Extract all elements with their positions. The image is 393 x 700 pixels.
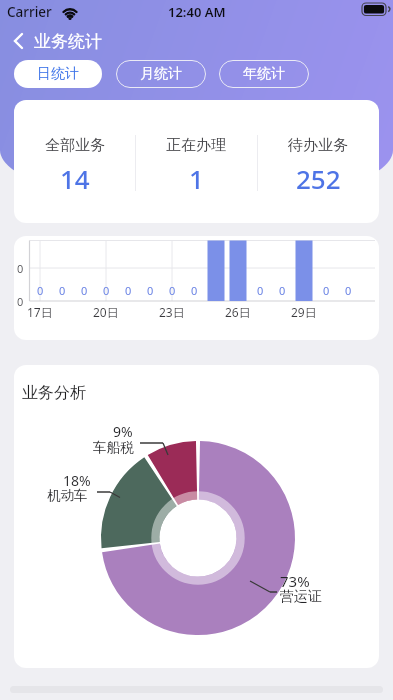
staticText: 月统计 <box>140 65 182 83</box>
staticText: 年统计 <box>243 65 285 83</box>
staticText: 0 <box>279 283 286 298</box>
button[interactable]: 业务分析 <box>14 365 379 668</box>
staticText: 全部业务 <box>45 136 105 155</box>
staticText: 23日 <box>159 304 185 320</box>
staticText: 0 <box>169 283 176 298</box>
staticText: 73% <box>280 571 310 591</box>
staticText: 26日 <box>225 304 251 320</box>
button[interactable]: 日统计 <box>14 60 102 88</box>
staticText: 业务分析 <box>22 383 86 403</box>
staticText: 0 <box>37 283 44 298</box>
staticText: 0 <box>59 283 66 298</box>
staticText: 0 <box>257 283 264 298</box>
staticText: 机动车 <box>47 487 88 504</box>
staticText: 18% <box>63 471 91 490</box>
staticText: 17日 <box>27 304 53 320</box>
staticText: 0 <box>323 283 330 298</box>
staticText: 0 <box>191 283 198 298</box>
staticText: 14 <box>60 161 90 196</box>
button[interactable]: 月统计 <box>116 60 206 88</box>
staticText: 日统计 <box>37 65 79 83</box>
staticText: 0 <box>345 283 352 298</box>
button[interactable]: 全部业务 <box>14 100 379 223</box>
staticText: 0 <box>81 283 88 298</box>
staticText: 12:40 AM <box>168 3 226 21</box>
staticText: 252 <box>296 161 341 196</box>
staticText: 29日 <box>291 304 317 320</box>
staticText: 9% <box>113 422 133 441</box>
staticText: 0 <box>17 294 24 309</box>
staticText: 营运证 <box>280 588 322 606</box>
button[interactable]: 年统计 <box>219 60 309 88</box>
staticText: 20日 <box>93 304 119 320</box>
button[interactable]: 业务统计 <box>8 28 102 54</box>
staticText: 0 <box>103 283 110 298</box>
button[interactable]: 0 <box>14 236 379 340</box>
staticText: 车船税 <box>93 439 134 456</box>
staticText: 0 <box>17 261 24 276</box>
staticText: 0 <box>125 283 132 298</box>
staticText: 业务统计 <box>34 31 102 52</box>
staticText: 0 <box>147 283 154 298</box>
staticText: Carrier <box>7 3 52 21</box>
staticText: 待办业务 <box>288 136 348 155</box>
staticText: 正在办理 <box>166 136 226 155</box>
staticText: 1 <box>189 161 204 196</box>
